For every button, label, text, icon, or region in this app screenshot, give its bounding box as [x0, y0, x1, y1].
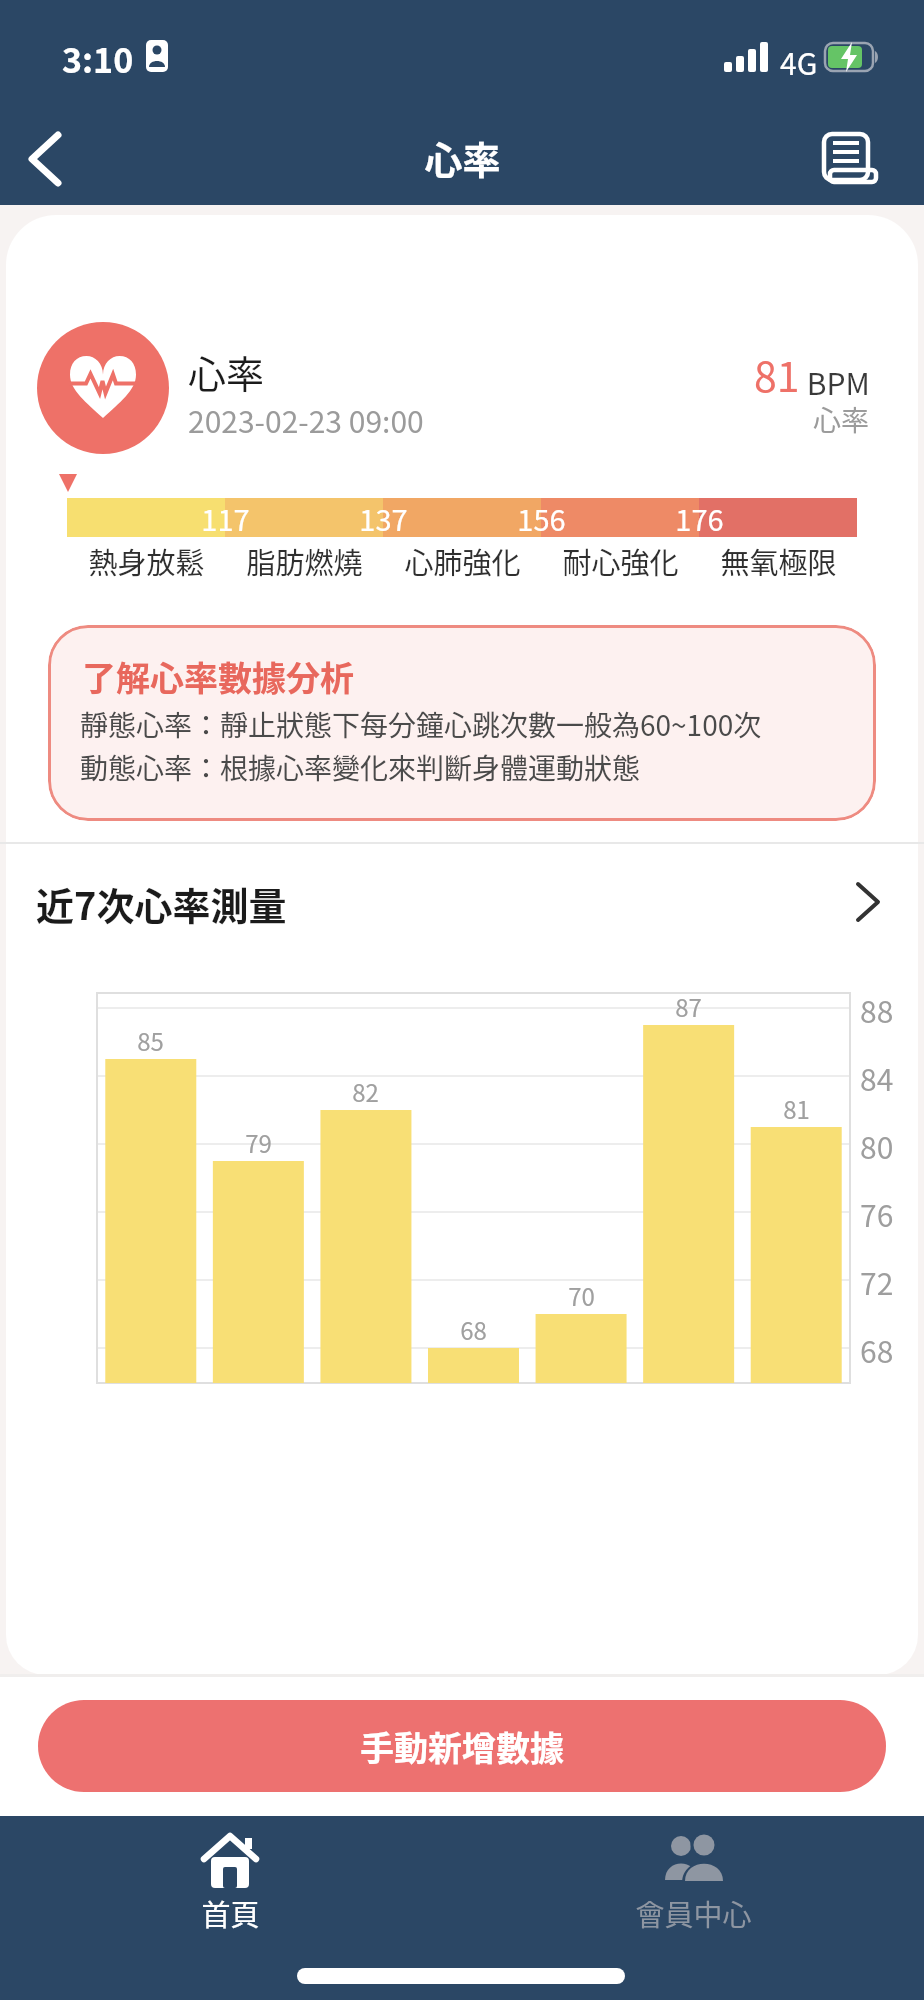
staticText: 4G: [780, 40, 818, 83]
staticText: 熱身放鬆: [88, 540, 205, 582]
staticText: 70: [568, 1278, 595, 1313]
staticText: 手動新增數據: [360, 1722, 564, 1771]
staticText: 了解心率數據分析: [82, 652, 354, 701]
staticText: 靜態心率：靜止狀態下每分鐘心跳次數一般為60~100次: [80, 704, 762, 745]
staticText: 80: [860, 1124, 894, 1167]
staticText: 心率: [424, 130, 501, 185]
staticText: 85: [137, 1023, 164, 1058]
staticText: 88: [860, 988, 894, 1031]
staticText: 156: [517, 497, 566, 539]
button[interactable]: 手動新增數據: [38, 1700, 886, 1792]
staticText: 脂肪燃燒: [246, 540, 363, 582]
staticText: 心率: [188, 344, 265, 399]
staticText: 81: [754, 344, 800, 403]
staticText: 2023-02-23 09:00: [188, 398, 424, 441]
staticText: 3:10: [62, 34, 134, 83]
staticText: 82: [352, 1074, 379, 1109]
button[interactable]: [816, 128, 880, 188]
staticText: 137: [359, 497, 408, 539]
staticText: 近7次心率測量: [36, 876, 287, 931]
staticText: 耐心強化: [562, 540, 679, 582]
staticText: 首頁: [201, 1892, 260, 1934]
staticText: 76: [860, 1192, 894, 1235]
button[interactable]: 近7次心率測量: [0, 862, 924, 932]
button[interactable]: [14, 128, 78, 192]
staticText: 會員中心: [635, 1892, 752, 1934]
button[interactable]: 會員中心: [623, 1820, 763, 1940]
button[interactable]: 首頁: [160, 1820, 300, 1940]
staticText: BPM: [800, 360, 870, 403]
staticText: 117: [201, 497, 250, 539]
staticText: 無氧極限: [720, 540, 837, 582]
staticText: 79: [245, 1125, 272, 1160]
staticText: 68: [460, 1312, 487, 1347]
staticText: 72: [860, 1260, 894, 1303]
staticText: 81: [783, 1091, 810, 1126]
staticText: 心肺強化: [404, 540, 521, 582]
staticText: 84: [860, 1056, 894, 1099]
staticText: 動態心率：根據心率變化來判斷身體運動狀態: [80, 747, 641, 788]
staticText: 心率: [813, 399, 870, 440]
staticText: 68: [860, 1328, 894, 1371]
staticText: 176: [675, 497, 724, 539]
staticText: 87: [675, 989, 702, 1024]
